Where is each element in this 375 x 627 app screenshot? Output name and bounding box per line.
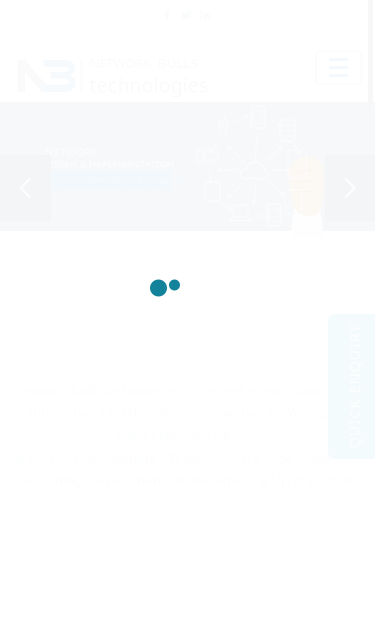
staticText: solutions meeting the client’s requireme… [15, 403, 359, 421]
staticText: Network Bulls Technologies offer end-to-… [13, 381, 361, 399]
button[interactable]: Menu [316, 51, 361, 84]
staticText: QUICK ENQUIRY [292, 377, 375, 396]
